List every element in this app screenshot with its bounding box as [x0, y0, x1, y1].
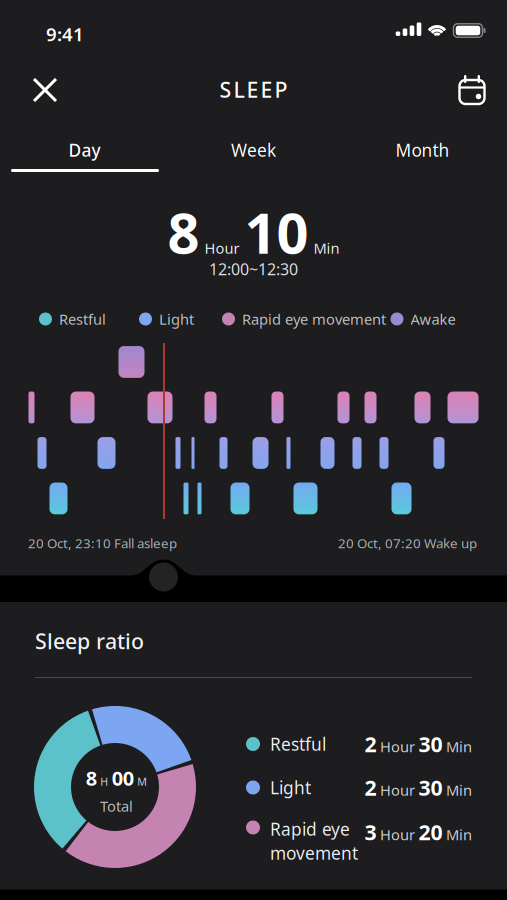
staticText: M: [137, 774, 147, 789]
staticText: Sleep ratio: [35, 627, 144, 655]
staticText: 3: [364, 818, 376, 846]
staticText: 20 Oct, 23:10 Fall asleep: [28, 534, 177, 552]
staticText: Min: [446, 780, 472, 800]
staticText: Rapid eye movement: [242, 309, 386, 329]
staticText: Awake: [410, 309, 455, 329]
staticText: Rapid eye: [270, 817, 350, 840]
staticText: 2: [364, 730, 376, 758]
staticText: Restful: [270, 732, 326, 755]
staticText: 00: [112, 765, 134, 791]
staticText: Hour: [204, 238, 239, 258]
staticText: Min: [446, 825, 472, 844]
staticText: Min: [446, 737, 472, 756]
staticText: Total: [100, 796, 133, 816]
staticText: 8: [86, 765, 97, 791]
staticText: 20 Oct, 07:20 Wake up: [338, 534, 477, 552]
staticText: 20: [418, 818, 442, 846]
button[interactable]: Week: [169, 130, 338, 170]
staticText: 2: [364, 773, 376, 802]
staticText: Hour: [380, 825, 415, 844]
staticText: 10: [244, 195, 308, 269]
staticText: Month: [395, 138, 449, 161]
button[interactable]: Day: [0, 130, 169, 170]
staticText: Hour: [380, 780, 415, 800]
button[interactable]: Month: [338, 130, 507, 170]
staticText: Hour: [380, 737, 415, 756]
staticText: Week: [231, 138, 276, 161]
staticText: 12:00~12:30: [209, 258, 298, 280]
staticText: movement: [270, 841, 358, 864]
button[interactable]: Calendar: [448, 64, 496, 114]
staticText: 9:41: [46, 22, 84, 46]
staticText: SLEEP: [219, 75, 287, 104]
staticText: Day: [68, 138, 100, 161]
staticText: Light: [159, 309, 194, 329]
button[interactable]: Close: [22, 67, 68, 113]
staticText: H: [100, 774, 108, 789]
staticText: Min: [313, 238, 339, 258]
staticText: Restful: [59, 309, 106, 329]
staticText: 30: [418, 773, 442, 802]
staticText: 8: [167, 195, 199, 269]
staticText: Light: [270, 776, 311, 799]
staticText: 30: [418, 730, 442, 758]
